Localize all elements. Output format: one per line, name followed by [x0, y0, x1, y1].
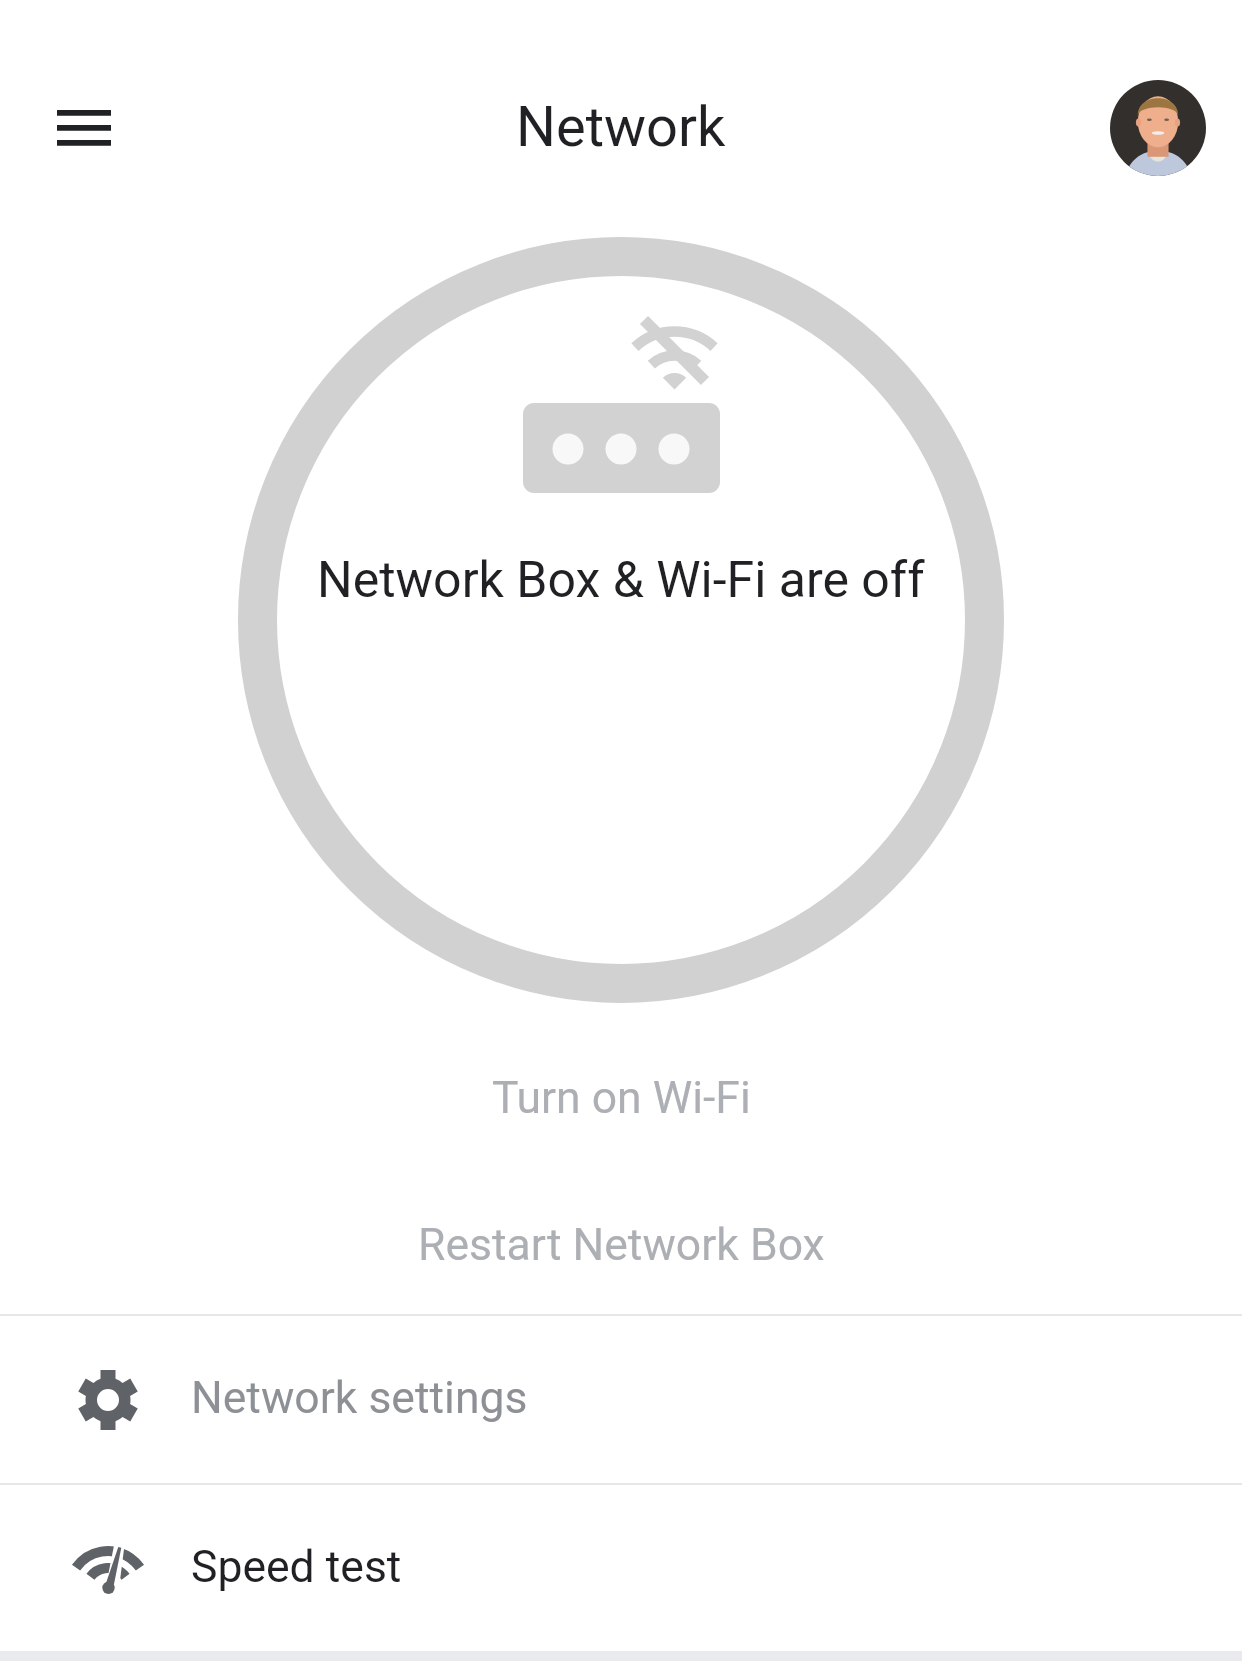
button[interactable]: Turn on Wi-Fi — [452, 1056, 791, 1140]
button[interactable]: Speed test — [0, 1485, 1242, 1652]
staticText: Restart Network Box — [418, 1219, 825, 1271]
button[interactable]: Account profile — [1110, 80, 1206, 176]
staticText: Network — [516, 94, 726, 160]
staticText: Turn on Wi-Fi — [492, 1072, 751, 1124]
staticText: Speed test — [191, 1541, 402, 1593]
staticText: Network settings — [191, 1372, 528, 1424]
button[interactable]: Open navigation menu — [33, 79, 135, 175]
button[interactable]: Restart Network Box — [378, 1203, 865, 1287]
staticText: Network Box & Wi-Fi are off — [317, 551, 925, 610]
button[interactable]: Network settings — [0, 1316, 1242, 1483]
